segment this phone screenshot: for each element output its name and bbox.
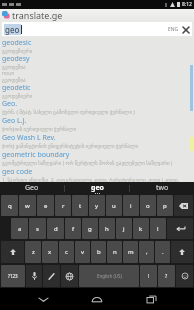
button[interactable]: y: [89, 195, 105, 216]
staticText: i: [130, 202, 132, 210]
button[interactable]: translate.ge: [0, 9, 194, 21]
button[interactable]: ?123: [1, 265, 25, 287]
button[interactable]: k: [133, 218, 149, 239]
staticText: ,: [146, 248, 148, 256]
button[interactable]: geometric boundary: [2, 150, 188, 160]
button[interactable]: ?: [158, 265, 175, 287]
staticText: k: [139, 225, 143, 233]
staticText: გეოდეზია: [2, 64, 188, 70]
button[interactable]: geodetic: [2, 83, 188, 93]
staticText: გეოდეზიური: [2, 48, 188, 54]
button[interactable]: Emoji: [176, 265, 193, 287]
staticText: f: [72, 225, 75, 233]
button[interactable]: l: [150, 218, 166, 239]
button[interactable]: ,: [139, 241, 154, 263]
button[interactable]: e: [37, 195, 54, 216]
button[interactable]: Voice input: [26, 265, 42, 287]
button[interactable]: Geo Wash L Rev.: [2, 133, 188, 143]
staticText: a: [18, 225, 22, 233]
staticText: ENG: [168, 26, 179, 33]
staticText: გეოდეზიური: [2, 93, 188, 99]
button[interactable]: Enter: [167, 218, 193, 239]
staticText: h: [105, 225, 109, 233]
staticText: v: [81, 248, 85, 256]
button[interactable]: geo code: [2, 167, 188, 177]
staticText: s: [36, 225, 39, 233]
button[interactable]: i: [123, 195, 139, 216]
staticText: x: [48, 248, 52, 256]
button[interactable]: Shift: [171, 241, 193, 263]
button[interactable]: .: [155, 241, 170, 263]
button[interactable]: w: [19, 195, 36, 216]
button[interactable]: c: [59, 241, 74, 263]
staticText: ჯორჯ ვაშინგტონის უნივერსიტეტის იურიდიული…: [2, 143, 188, 150]
button[interactable]: f: [65, 218, 81, 239]
staticText: გეომეტრიული საზღვარი ( ორ წერტილს შორის …: [2, 160, 188, 167]
button[interactable]: u: [106, 195, 122, 216]
button[interactable]: Clear: [181, 25, 190, 34]
button[interactable]: n: [107, 241, 122, 263]
button[interactable]: a: [11, 218, 28, 239]
button[interactable]: t: [72, 195, 88, 216]
staticText: noun: [2, 70, 188, 77]
button[interactable]: q: [1, 195, 18, 216]
button[interactable]: r: [55, 195, 71, 216]
staticText: English (US): [97, 273, 122, 279]
staticText: y: [95, 202, 99, 210]
button[interactable]: !: [140, 265, 157, 287]
button[interactable]: d: [47, 218, 64, 239]
staticText: b: [97, 248, 101, 256]
staticText: !: [148, 273, 150, 280]
button[interactable]: Recent apps: [140, 288, 162, 310]
staticText: geo: [5, 24, 20, 35]
staticText: g: [88, 225, 92, 233]
button[interactable]: Hide keyboard: [32, 288, 54, 310]
button[interactable]: Geo.: [2, 99, 188, 109]
staticText: geo: [91, 183, 104, 193]
button[interactable]: two: [130, 182, 194, 194]
staticText: გეოდეზია: [2, 77, 188, 83]
button[interactable]: j: [116, 218, 132, 239]
staticText: q: [8, 202, 12, 210]
staticText: p: [163, 202, 167, 210]
staticText: e: [44, 202, 48, 210]
button[interactable]: Handwriting: [43, 265, 60, 287]
button[interactable]: z: [25, 241, 41, 263]
button[interactable]: Change language: [61, 265, 78, 287]
button[interactable]: h: [99, 218, 115, 239]
button[interactable]: p: [157, 195, 173, 216]
staticText: t: [79, 202, 82, 210]
button[interactable]: geodesy: [2, 54, 188, 64]
button[interactable]: Home: [86, 288, 108, 310]
staticText: 8:12: [182, 1, 192, 8]
button[interactable]: o: [140, 195, 156, 216]
button[interactable]: English (US): [79, 265, 139, 287]
staticText: w: [25, 202, 30, 210]
staticText: ჯორჯიის იურიდიული ჟურნალი: [2, 126, 188, 133]
button[interactable]: Geo: [0, 182, 64, 194]
staticText: ?123: [8, 273, 18, 279]
staticText: m: [128, 248, 134, 256]
staticText: n: [113, 248, 117, 256]
staticText: z: [32, 248, 35, 256]
button[interactable]: x: [42, 241, 58, 263]
button[interactable]: Backspace: [174, 195, 193, 216]
staticText: r: [62, 202, 65, 210]
staticText: u: [112, 202, 116, 210]
button[interactable]: geodesic: [2, 38, 188, 48]
staticText: .: [162, 248, 164, 256]
button[interactable]: s: [29, 218, 46, 239]
staticText: j: [123, 225, 125, 233]
button[interactable]: Shift: [1, 241, 24, 263]
staticText: 1. საერთო ინდექსი. 2. გეოგრაფიული კოდი, …: [2, 177, 188, 182]
staticText: translate.ge: [12, 9, 63, 21]
button[interactable]: geo: [65, 182, 129, 194]
staticText: o: [146, 202, 150, 210]
button[interactable]: Geo L.J.: [2, 116, 188, 126]
button[interactable]: g: [82, 218, 98, 239]
button[interactable]: v: [75, 241, 90, 263]
button[interactable]: m: [123, 241, 138, 263]
button[interactable]: b: [91, 241, 106, 263]
button[interactable]: geo: [2, 22, 192, 36]
staticText: two: [156, 183, 169, 193]
